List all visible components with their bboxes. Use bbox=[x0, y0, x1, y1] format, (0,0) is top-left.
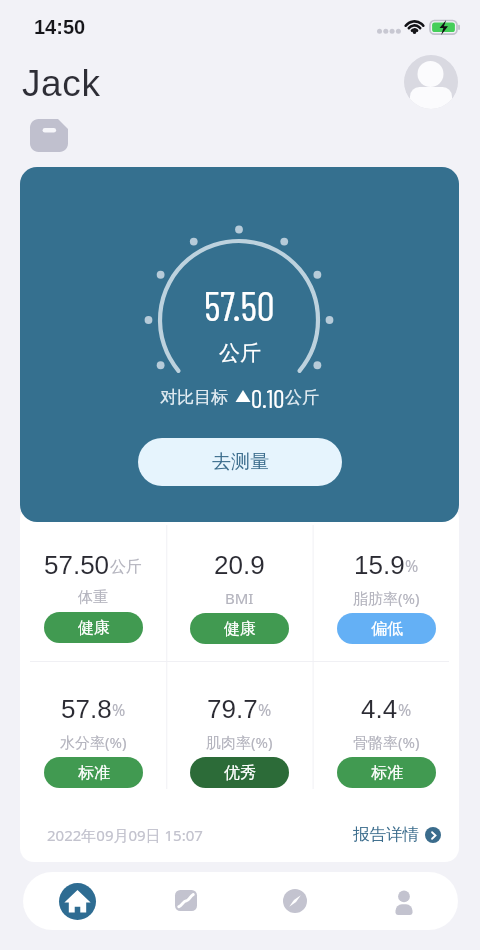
staticText: 报告详情 bbox=[353, 824, 419, 845]
button[interactable]: 优秀 bbox=[190, 757, 289, 788]
staticText: 57.50 bbox=[44, 550, 110, 579]
staticText: 79.7 bbox=[207, 694, 258, 723]
staticText: 15.9 bbox=[354, 550, 405, 579]
staticText: Jack bbox=[22, 63, 101, 104]
staticText: 公斤 bbox=[219, 340, 261, 366]
staticText: 骨骼率(%) bbox=[353, 732, 420, 752]
staticText: 水分率(%) bbox=[60, 732, 127, 752]
button[interactable]: 57.8 bbox=[20, 661, 166, 805]
button[interactable]: 去测量 bbox=[138, 438, 342, 486]
button[interactable]: 健康 bbox=[190, 613, 289, 644]
button[interactable]: 79.7 bbox=[166, 661, 312, 805]
staticText: 4.4 bbox=[361, 694, 398, 723]
button[interactable]: Trends bbox=[131, 872, 240, 930]
staticText: 公斤 bbox=[285, 387, 319, 408]
staticText: 0.10 bbox=[251, 383, 285, 413]
staticText: % bbox=[398, 699, 412, 721]
button[interactable]: 15.9 bbox=[313, 517, 459, 661]
staticText: 优秀 bbox=[224, 763, 256, 783]
staticText: 健康 bbox=[224, 619, 256, 639]
staticText: 14:50 bbox=[34, 16, 86, 38]
staticText: 57.50 bbox=[204, 281, 275, 329]
staticText: 标准 bbox=[371, 763, 403, 783]
staticText: % bbox=[405, 555, 419, 577]
button[interactable]: 报告详情 bbox=[353, 824, 441, 845]
button[interactable]: Me bbox=[349, 872, 458, 930]
staticText: % bbox=[258, 699, 272, 721]
staticText: % bbox=[112, 699, 126, 721]
staticText: 肌肉率(%) bbox=[206, 732, 273, 752]
staticText: 体重 bbox=[78, 588, 108, 607]
staticText: 57.8 bbox=[61, 694, 112, 723]
button[interactable]: Discover bbox=[240, 872, 349, 930]
button[interactable]: Home bbox=[23, 872, 131, 930]
button[interactable]: 4.4 bbox=[313, 661, 459, 805]
button[interactable]: 标准 bbox=[337, 757, 436, 788]
staticText: 公斤 bbox=[110, 557, 142, 577]
staticText: 健康 bbox=[78, 618, 110, 638]
button[interactable]: 标准 bbox=[44, 757, 143, 788]
button[interactable]: 20.9 bbox=[166, 517, 312, 661]
button[interactable]: 偏低 bbox=[337, 613, 436, 644]
other: Scale device bbox=[30, 119, 68, 152]
staticText: 去测量 bbox=[212, 450, 269, 474]
button[interactable]: 健康 bbox=[44, 612, 143, 643]
button[interactable]: Profile avatar bbox=[404, 55, 458, 109]
staticText: 20.9 bbox=[214, 550, 265, 579]
staticText: BMI bbox=[225, 588, 254, 608]
staticText: 对比目标 bbox=[160, 387, 228, 408]
staticText: 偏低 bbox=[371, 619, 403, 639]
staticText: 2022年09月09日 15:07 bbox=[47, 825, 203, 845]
button[interactable]: 57.50 bbox=[20, 517, 166, 661]
staticText: 标准 bbox=[78, 763, 110, 783]
staticText: 脂肪率(%) bbox=[353, 588, 420, 608]
